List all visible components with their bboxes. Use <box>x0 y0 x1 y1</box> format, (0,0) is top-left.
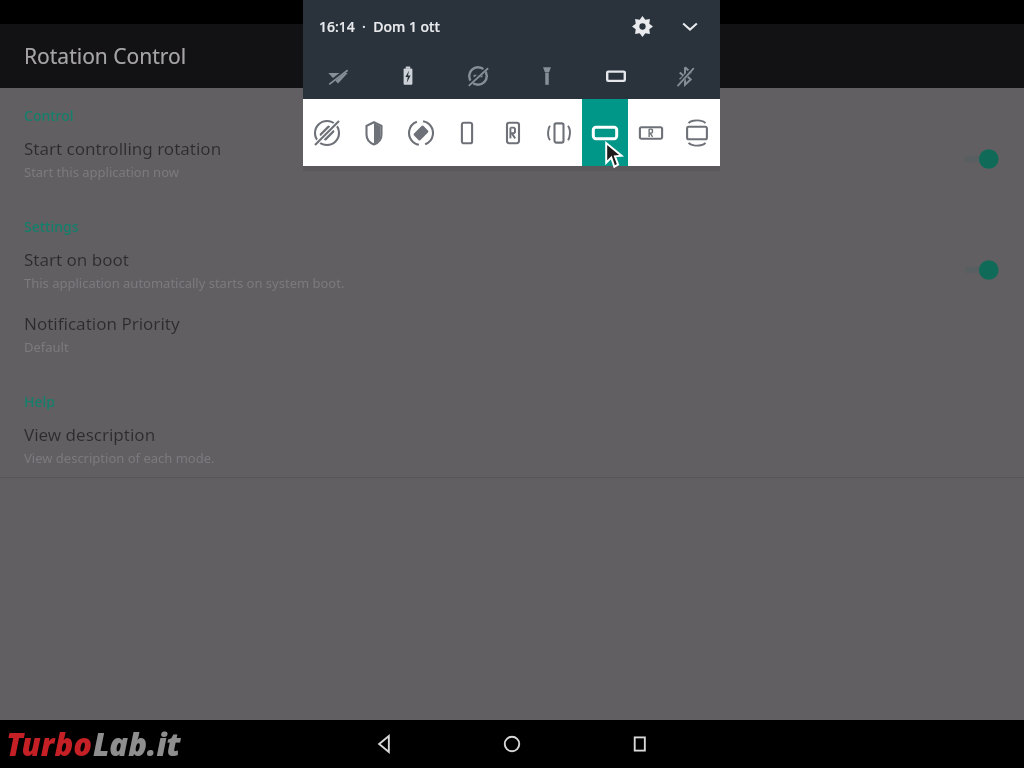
other: Battery charging <box>393 61 423 91</box>
button[interactable]: Home <box>484 720 540 768</box>
other: Rotation <box>601 61 631 91</box>
button[interactable]: View description <box>0 413 1024 477</box>
other: Do not disturb off <box>463 61 493 91</box>
staticText: 16:14 · Dom 1 ott <box>319 17 440 36</box>
button[interactable]: Toggle <box>952 139 1000 179</box>
staticText: Settings <box>24 217 79 236</box>
button[interactable]: Rotation mode <box>536 99 582 166</box>
staticText: Control <box>24 106 74 125</box>
staticText: Lab.it <box>93 723 181 765</box>
button[interactable]: Recents <box>612 720 668 768</box>
button[interactable]: Rotation mode <box>303 99 350 166</box>
staticText: Turbo <box>6 723 93 765</box>
staticText: Rotation Control <box>24 42 187 71</box>
button[interactable]: Rotation mode <box>350 99 397 166</box>
button[interactable]: Rotation mode <box>490 99 536 166</box>
button[interactable]: Expand <box>670 6 710 46</box>
button[interactable]: Toggle <box>952 250 1000 290</box>
button[interactable]: Settings <box>622 6 662 46</box>
button[interactable]: Notification Priority <box>0 302 1024 366</box>
other: Bluetooth off <box>670 61 700 91</box>
staticText: Notification Priority <box>24 312 180 335</box>
staticText: View description of each mode. <box>24 449 215 467</box>
button[interactable]: Rotation mode <box>397 99 444 166</box>
staticText: Start this application now <box>24 163 179 181</box>
button[interactable]: Back <box>356 720 412 768</box>
staticText: Help <box>24 392 55 411</box>
staticText: Default <box>24 338 69 356</box>
button[interactable]: Start controlling rotation <box>0 127 1024 191</box>
button[interactable]: Start on boot <box>0 238 1024 302</box>
other: Wi-Fi off <box>323 61 353 91</box>
staticText: Start controlling rotation <box>24 137 222 160</box>
button[interactable]: Rotation mode <box>444 99 490 166</box>
staticText: View description <box>24 423 156 446</box>
staticText: This application automatically starts on… <box>24 274 345 292</box>
button[interactable]: Rotation mode <box>674 99 720 166</box>
button[interactable]: Rotation mode <box>628 99 674 166</box>
staticText: Start on boot <box>24 248 129 271</box>
button[interactable]: Rotation mode <box>582 99 628 166</box>
other: Flashlight <box>532 61 562 91</box>
